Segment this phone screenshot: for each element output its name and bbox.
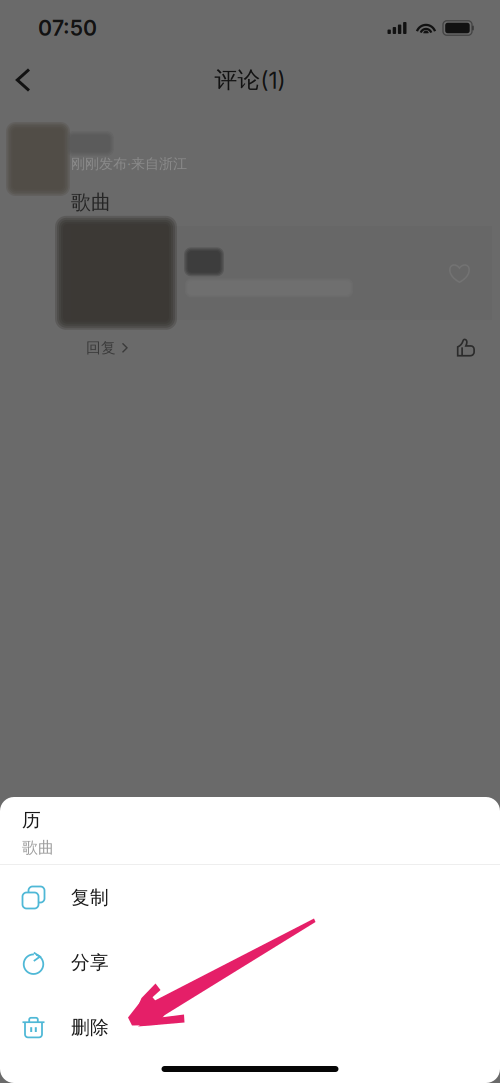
staticText: 历: [22, 808, 41, 832]
staticText: 评论(1): [214, 66, 285, 94]
staticText: 删除: [71, 1016, 109, 1039]
staticText: 刚刚发布·来自浙江: [71, 155, 187, 173]
button[interactable]: 复制: [0, 865, 500, 930]
button[interactable]: Like: [455, 337, 477, 359]
button[interactable]: 回复: [86, 339, 128, 357]
button[interactable]: Back: [0, 58, 46, 102]
staticText: 歌曲: [71, 190, 111, 215]
staticText: 回复: [86, 339, 116, 357]
button[interactable]: 删除: [0, 995, 500, 1060]
staticText: 分享: [71, 951, 109, 974]
staticText: 复制: [71, 886, 109, 909]
staticText: 07:50: [38, 15, 97, 41]
button[interactable]: 分享: [0, 930, 500, 995]
staticText: 歌曲: [22, 838, 54, 858]
